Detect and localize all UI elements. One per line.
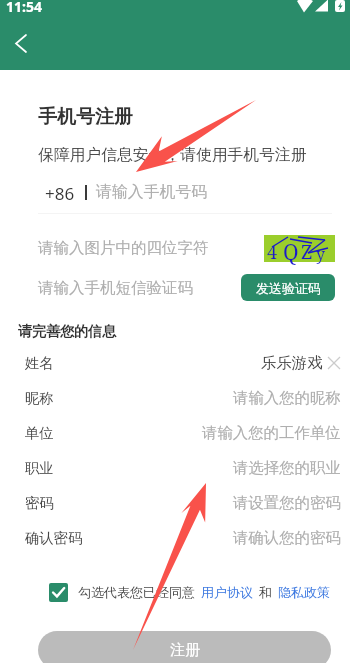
button[interactable]: 密码: [25, 485, 341, 520]
staticText: 发送验证码: [256, 280, 321, 296]
staticText: Z: [301, 239, 313, 265]
staticText: 请输入手机短信验证码: [38, 278, 193, 298]
button[interactable]: 隐私政策: [278, 584, 330, 600]
staticText: 请输入图片中的四位字符: [38, 238, 209, 258]
button[interactable]: Back: [5, 27, 37, 59]
staticText: 姓名: [25, 354, 54, 372]
staticText: 请确认您的密码: [233, 528, 341, 547]
staticText: 用户协议: [201, 584, 253, 600]
button[interactable]: 注册: [38, 631, 331, 663]
staticText: y: [316, 243, 326, 265]
staticText: 勾选代表您已经同意: [78, 584, 195, 600]
staticText: +86: [45, 182, 75, 202]
staticText: 请输入您的工作单位: [202, 423, 341, 442]
button[interactable]: 发送验证码: [241, 274, 335, 301]
staticText: 确认密码: [25, 529, 83, 547]
staticText: 乐乐游戏: [261, 353, 323, 372]
staticText: 密码: [25, 494, 54, 512]
staticText: 隐私政策: [278, 584, 330, 600]
staticText: 职业: [25, 459, 54, 477]
staticText: 注册: [170, 641, 200, 660]
staticText: 昵称: [25, 389, 54, 407]
button[interactable]: 确认密码: [25, 520, 341, 555]
staticText: 4: [267, 240, 278, 265]
staticText: Q: [283, 238, 299, 265]
staticText: 单位: [25, 424, 54, 442]
staticText: 和: [259, 584, 272, 600]
button[interactable]: 昵称: [25, 380, 341, 415]
staticText: 11:54: [6, 0, 42, 16]
staticText: 保障用户信息安全，请使用手机号注册: [38, 145, 307, 165]
button[interactable]: 姓名: [25, 345, 341, 380]
staticText: 请完善您的信息: [18, 323, 116, 341]
button[interactable]: 单位: [25, 415, 341, 450]
button[interactable]: 职业: [25, 450, 341, 485]
staticText: 请选择您的职业: [233, 458, 341, 477]
button[interactable]: Clear: [327, 356, 341, 370]
button[interactable]: Captcha image: [264, 235, 335, 262]
staticText: 手机号注册: [38, 105, 133, 129]
button[interactable]: 用户协议: [201, 584, 253, 600]
staticText: 请输入手机号码: [96, 182, 208, 202]
button[interactable]: Agree checkbox: [49, 583, 68, 602]
staticText: 请输入您的昵称: [233, 388, 341, 407]
staticText: 请设置您的密码: [233, 493, 341, 512]
